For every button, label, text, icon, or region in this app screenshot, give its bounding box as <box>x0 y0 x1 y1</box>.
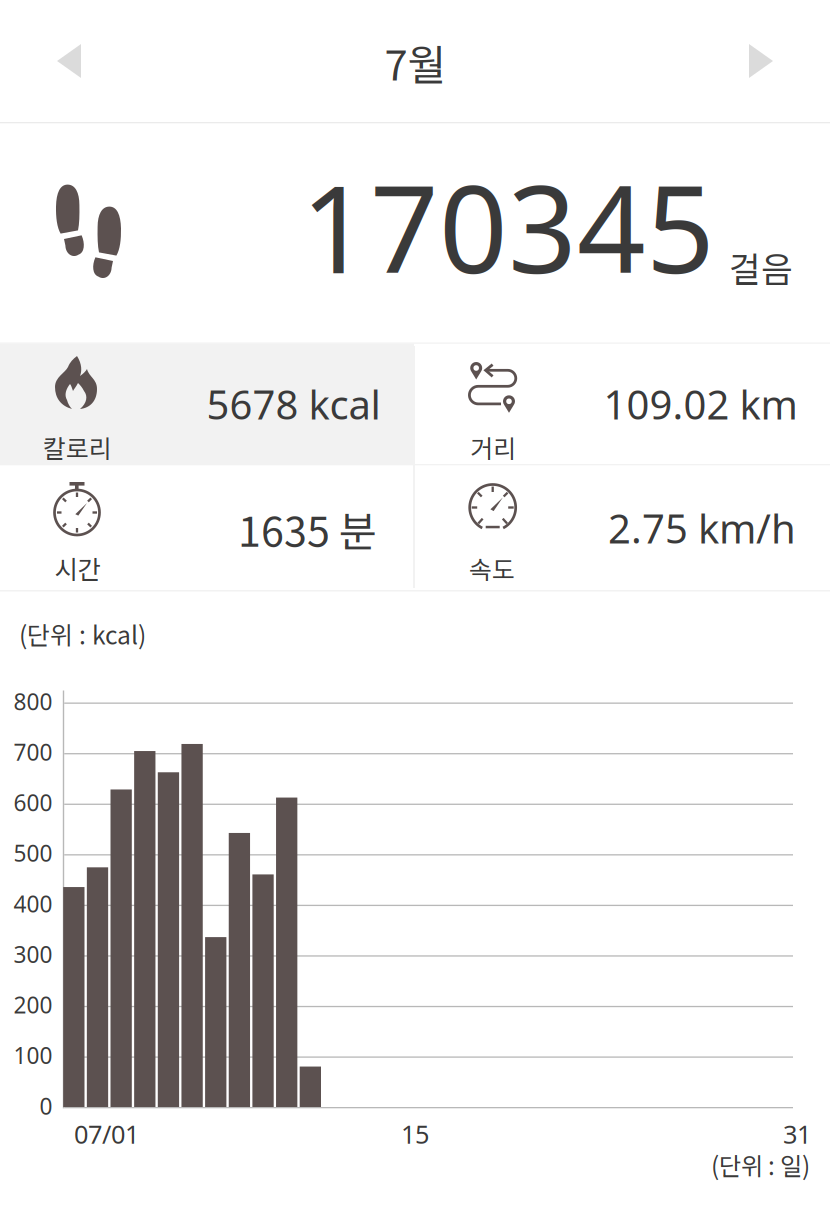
staticText: 500 <box>13 838 52 868</box>
staticText: 07/01 <box>74 1117 139 1151</box>
staticText: 5678 kcal <box>206 377 380 431</box>
button[interactable]: Previous month <box>21 13 117 109</box>
staticText: 31 <box>783 1117 811 1151</box>
staticText: 2.75 km/h <box>608 501 796 555</box>
staticText: 7월 <box>384 32 445 92</box>
staticText: 15 <box>401 1117 429 1151</box>
staticText: 400 <box>13 888 52 919</box>
staticText: 속도 <box>469 550 515 586</box>
staticText: 109.02 km <box>603 377 797 431</box>
staticText: 700 <box>13 737 52 767</box>
staticText: 800 <box>13 686 52 716</box>
staticText: 0 <box>39 1091 52 1121</box>
staticText: 170345 <box>301 147 715 306</box>
staticText: 300 <box>13 939 52 969</box>
staticText: 100 <box>13 1040 52 1070</box>
button[interactable]: 칼로리 <box>0 343 414 464</box>
button[interactable]: 거리 <box>414 343 830 464</box>
staticText: 걸음 <box>729 242 793 292</box>
staticText: (단위 : kcal) <box>19 616 146 652</box>
staticText: 시간 <box>54 549 100 586</box>
button[interactable]: 시간 <box>0 464 414 590</box>
staticText: (단위 : 일) <box>711 1147 810 1182</box>
staticText: 1635 분 <box>238 499 377 559</box>
staticText: 거리 <box>470 429 516 465</box>
button[interactable]: Next month <box>713 13 809 109</box>
staticText: 200 <box>13 990 52 1020</box>
staticText: 600 <box>13 787 52 817</box>
staticText: 칼로리 <box>42 429 111 465</box>
button[interactable]: 속도 <box>414 464 830 590</box>
